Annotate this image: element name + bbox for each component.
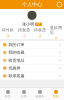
button[interactable]: 我的订单 (0, 41, 64, 48)
button[interactable]: 联系客服 (0, 72, 64, 80)
staticText: 我的订单 (9, 42, 25, 47)
staticText: 个人中心 (22, 1, 42, 8)
button[interactable]: 我的收藏 (0, 49, 64, 56)
staticText: 分类 (21, 95, 27, 98)
staticText: VIP (36, 22, 41, 26)
button[interactable]: 购物车 (32, 88, 48, 100)
button[interactable]: Settings (55, 0, 64, 9)
staticText: 购物车 (35, 95, 44, 98)
staticText: 0 (55, 36, 57, 41)
staticText: 3 (7, 33, 9, 39)
staticText: 联系客服 (9, 73, 25, 78)
staticText: 首页 (5, 95, 11, 98)
button[interactable]: 退款/售后 (48, 27, 64, 39)
button[interactable]: 优惠券 (0, 64, 64, 72)
button[interactable]: 收货地址 (0, 57, 64, 64)
staticText: 我的收藏 (9, 50, 25, 55)
staticText: 优惠券 (9, 66, 21, 70)
staticText: 我的 (53, 95, 59, 98)
staticText: 收货地址 (9, 58, 25, 63)
button[interactable]: 待收货 (32, 27, 48, 39)
button[interactable]: 待付款 (0, 27, 16, 39)
staticText: 1 (23, 33, 25, 39)
button[interactable]: 首页 (0, 88, 16, 100)
button[interactable]: 我的 (48, 88, 64, 100)
button[interactable]: 待发货 (16, 27, 32, 39)
staticText: 待发货 (18, 27, 30, 32)
staticText: 退款/售后 (50, 25, 63, 35)
staticText: 待付款 (2, 27, 14, 32)
staticText: 张小明 (22, 22, 34, 27)
button[interactable]: 分类 (16, 88, 32, 100)
staticText: 2 (39, 33, 41, 39)
staticText: 待收货 (34, 27, 46, 32)
